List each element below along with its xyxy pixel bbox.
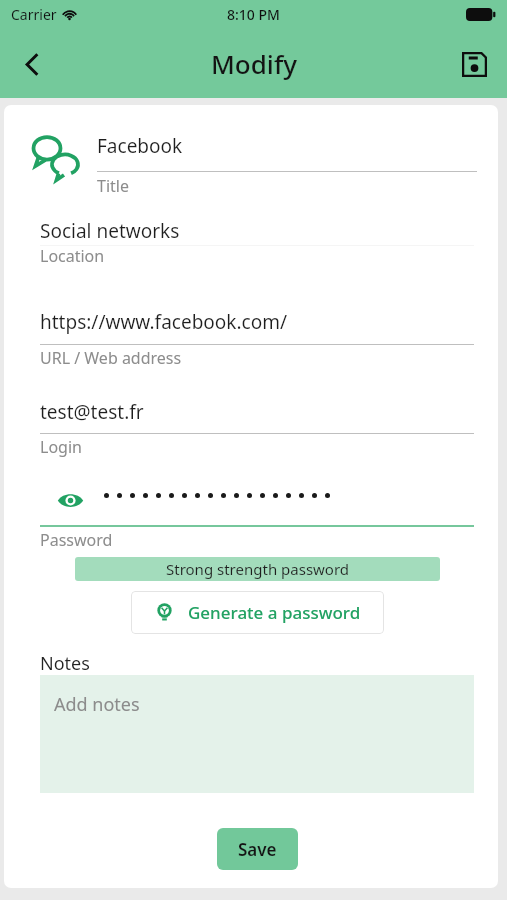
button[interactable]: Back xyxy=(8,40,56,88)
button[interactable]: Add notes xyxy=(40,675,474,793)
staticText: Location xyxy=(40,245,105,267)
staticText: Carrier xyxy=(11,5,57,24)
staticText: Strong strength password xyxy=(166,559,350,579)
staticText: Generate a password xyxy=(188,601,361,624)
button[interactable]: Save xyxy=(217,828,298,870)
staticText: test@test.fr xyxy=(40,399,144,425)
staticText: Login xyxy=(40,436,82,458)
staticText: Title xyxy=(97,175,129,197)
staticText: Save xyxy=(238,838,277,861)
staticText: Password xyxy=(40,529,113,551)
staticText: 8:10 PM xyxy=(227,5,280,24)
staticText: https://www.facebook.com/ xyxy=(40,309,288,335)
staticText: Social networks xyxy=(40,218,180,244)
staticText: Add notes xyxy=(54,692,140,717)
staticText: Notes xyxy=(40,651,90,676)
button[interactable]: Save xyxy=(450,40,498,88)
staticText: Facebook xyxy=(97,133,183,159)
staticText: URL / Web address xyxy=(40,347,182,369)
button[interactable]: Show password xyxy=(54,487,86,513)
staticText: Modify xyxy=(211,46,297,81)
button[interactable]: Generate a password xyxy=(131,591,384,634)
